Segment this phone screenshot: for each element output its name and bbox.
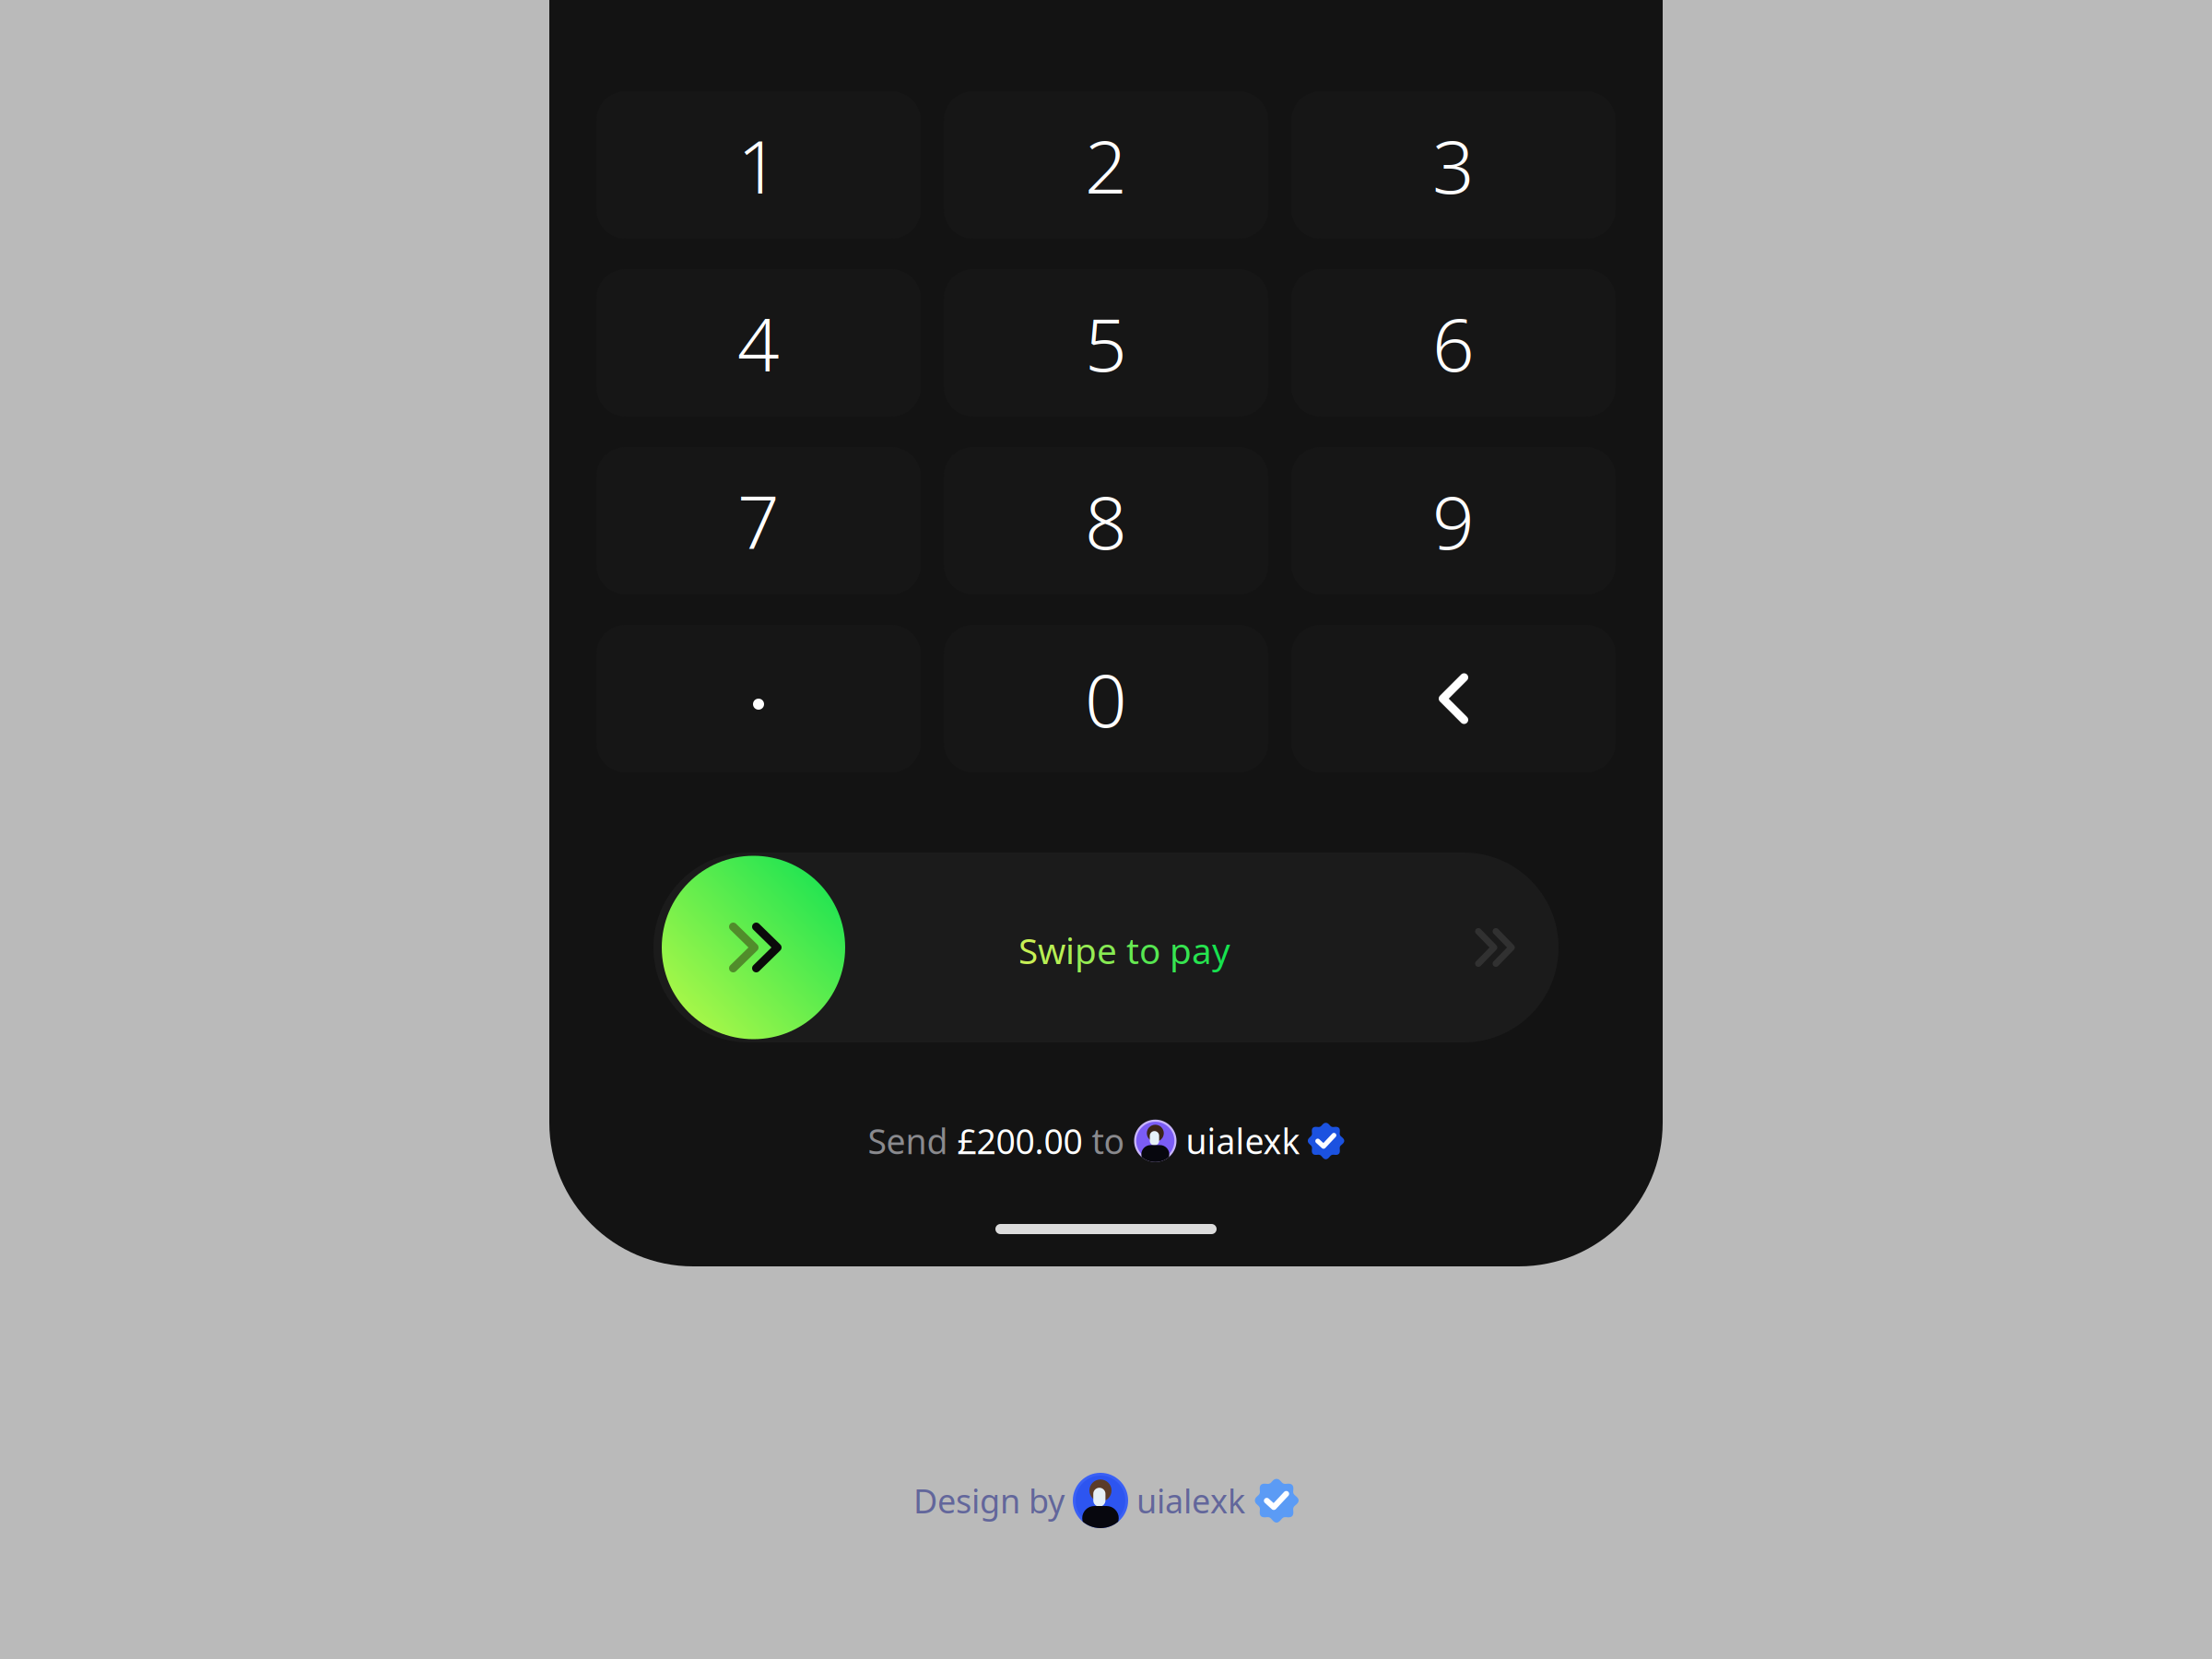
button[interactable] [596, 625, 921, 772]
button[interactable]: 9 [1291, 447, 1616, 594]
staticText: 2 [1085, 116, 1127, 214]
button[interactable]: 0 [944, 625, 1268, 772]
button[interactable]: Design by [913, 1473, 1299, 1528]
button[interactable] [1291, 625, 1616, 772]
staticText: p [1075, 927, 1097, 974]
staticText: uialexk [1177, 1118, 1300, 1164]
staticText: £200.00 [957, 1118, 1082, 1164]
staticText: 3 [1432, 116, 1475, 214]
staticText: Design by [913, 1478, 1073, 1523]
button[interactable]: 6 [1291, 269, 1616, 417]
button[interactable]: Send [868, 1118, 1344, 1164]
staticText: t [1126, 927, 1139, 974]
staticText: to [1082, 1118, 1134, 1164]
staticText: p [1170, 927, 1192, 974]
staticText: 1 [737, 116, 780, 214]
staticText: o [1139, 927, 1160, 974]
staticText: 7 [737, 472, 780, 570]
button[interactable]: 3 [1291, 91, 1616, 239]
staticText: 4 [737, 294, 780, 392]
staticText: 6 [1432, 294, 1475, 392]
staticText: e [1097, 927, 1117, 974]
staticText: a [1192, 927, 1212, 974]
staticText: 5 [1085, 294, 1127, 392]
button[interactable]: 5 [944, 269, 1268, 417]
button[interactable]: 2 [944, 91, 1268, 239]
staticText: i [1065, 927, 1075, 974]
button[interactable]: 1 [596, 91, 921, 239]
staticText: 8 [1085, 472, 1127, 570]
staticText: y [1212, 927, 1230, 974]
staticText: 0 [1085, 650, 1127, 748]
button[interactable]: 7 [596, 447, 921, 594]
button[interactable]: 4 [596, 269, 921, 417]
staticText: w [1038, 927, 1065, 974]
staticText: S [1018, 927, 1038, 974]
button[interactable]: S [653, 853, 1559, 1042]
staticText: 9 [1432, 472, 1475, 570]
staticText: uialexk [1128, 1478, 1245, 1523]
button[interactable]: 8 [944, 447, 1268, 594]
staticText: Send [868, 1118, 957, 1164]
